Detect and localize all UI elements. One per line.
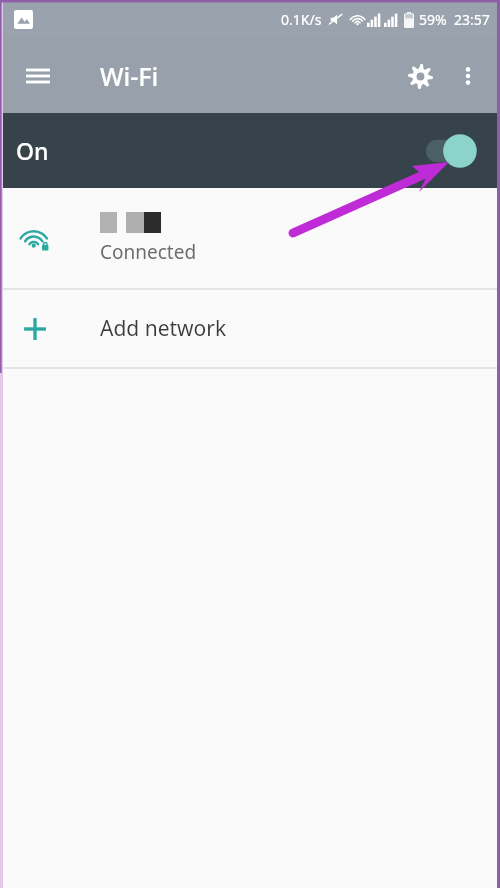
button[interactable]: On bbox=[0, 113, 500, 188]
button[interactable]: More options bbox=[444, 52, 492, 100]
button[interactable]: Wi-Fi toggle, on bbox=[426, 131, 486, 171]
staticText: 0.1K/s bbox=[281, 10, 322, 29]
button[interactable]: Navigation menu bbox=[14, 52, 62, 100]
staticText: 23:57 bbox=[454, 10, 490, 29]
staticText: Connected bbox=[100, 239, 197, 265]
staticText: 59% bbox=[419, 10, 447, 29]
staticText: Add network bbox=[100, 314, 227, 343]
staticText: Wi-Fi bbox=[100, 59, 159, 93]
button[interactable]: Wi-Fi settings bbox=[396, 52, 444, 100]
button[interactable]: Add network bbox=[0, 290, 500, 367]
button[interactable]: Connected bbox=[0, 188, 500, 288]
staticText: On bbox=[16, 135, 49, 166]
